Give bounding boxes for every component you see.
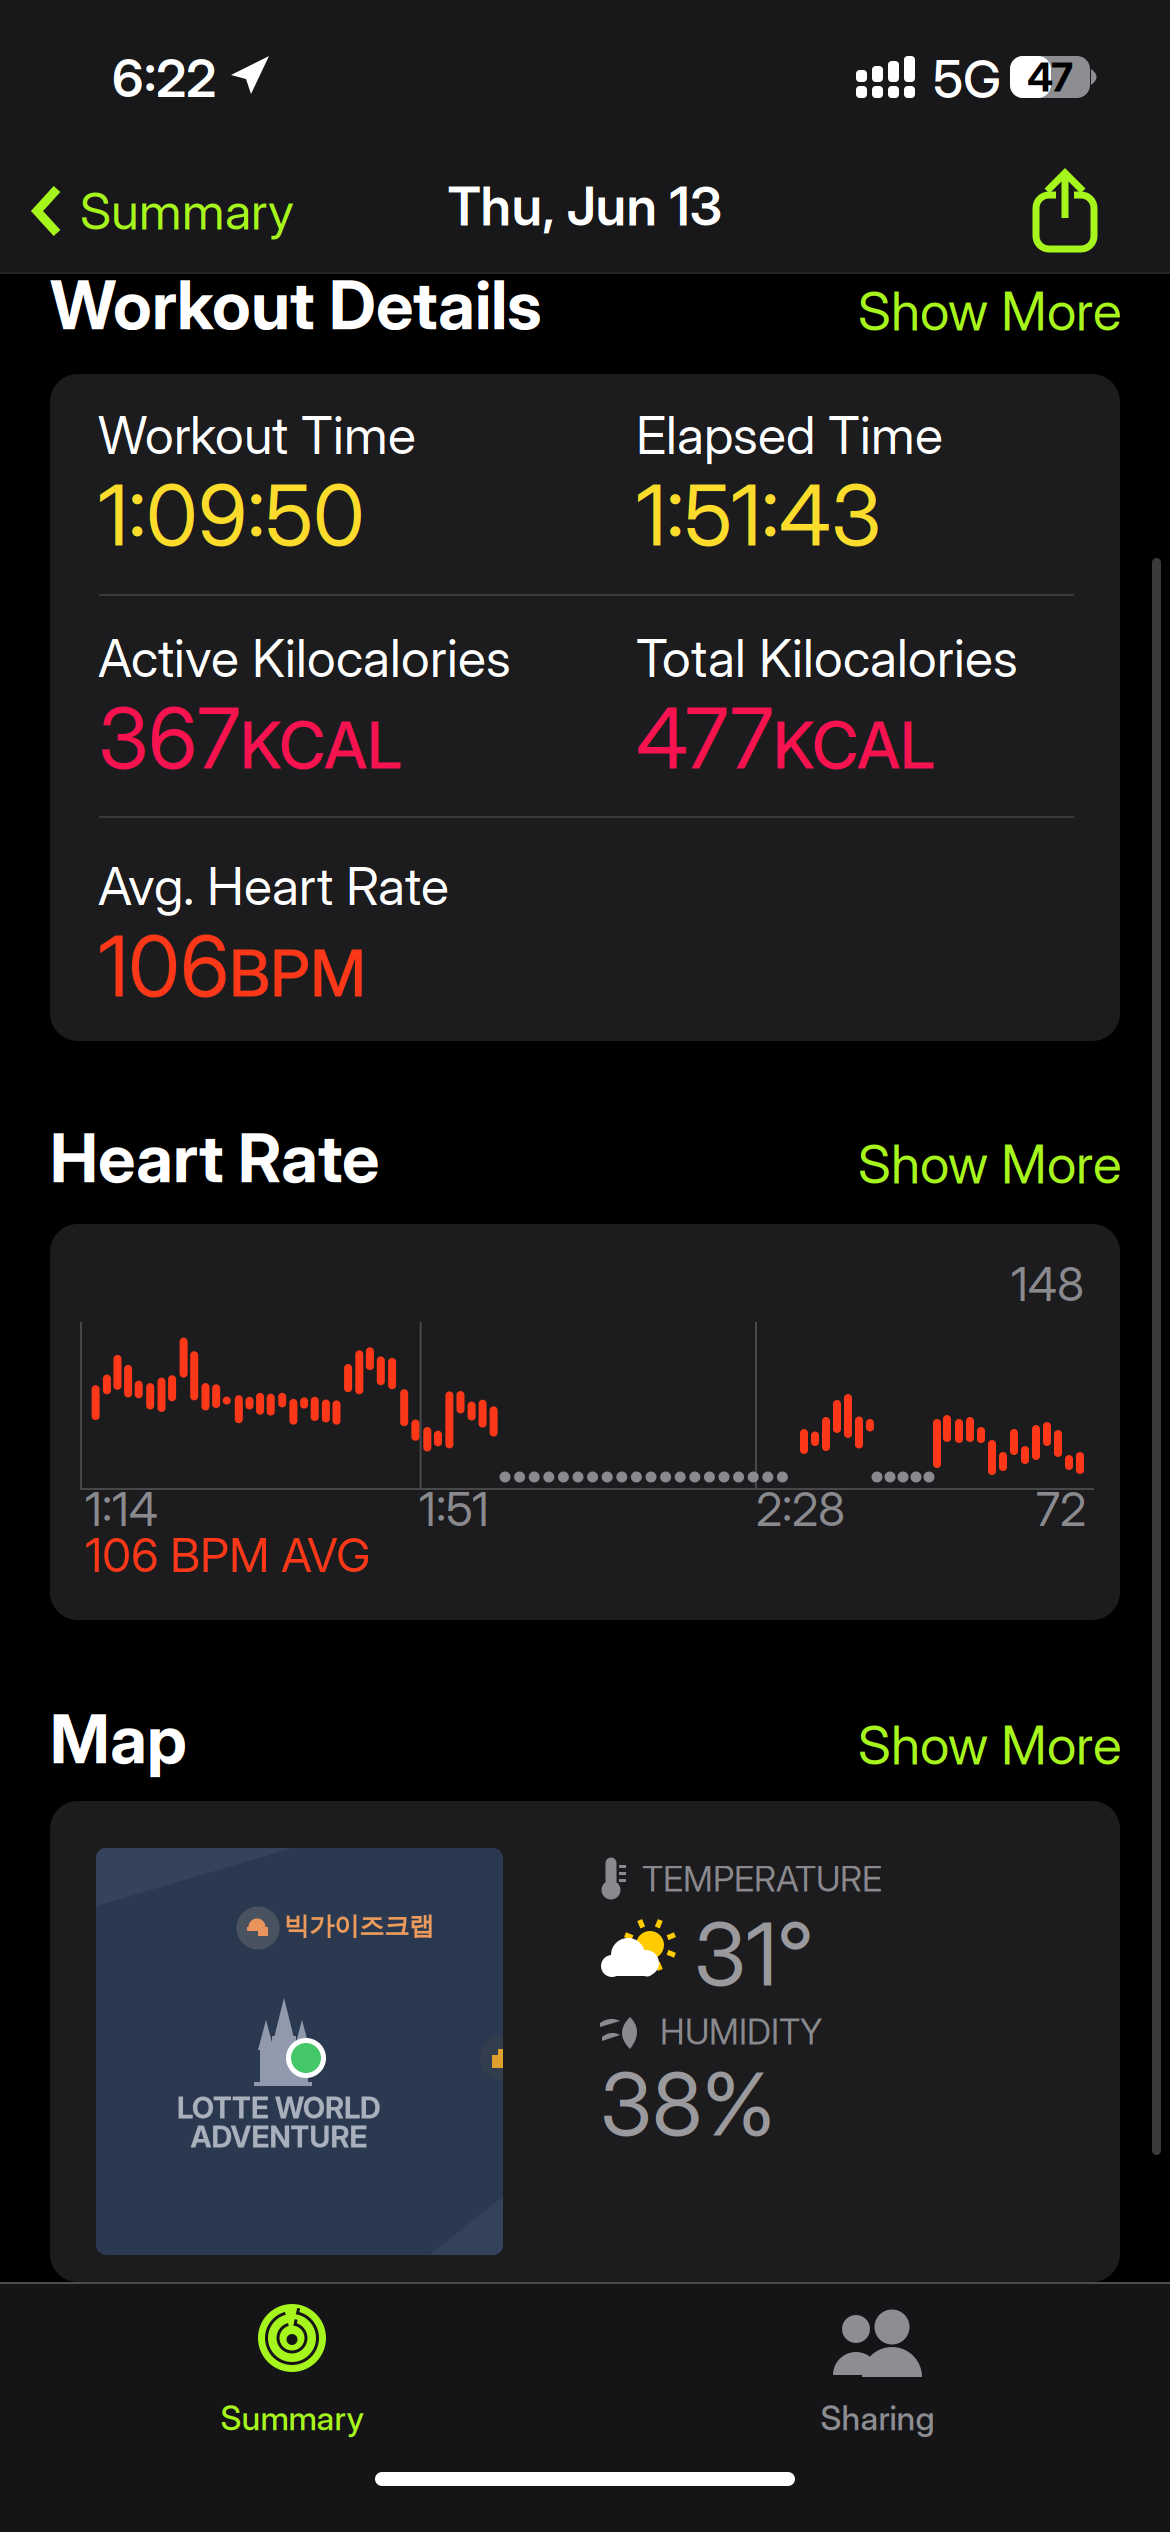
staticText: 106 BPM AVG (85, 1527, 370, 1583)
staticText: Active Kilocalories (98, 626, 511, 689)
staticText: 47 (1027, 53, 1073, 101)
button[interactable]: Show More (560, 1128, 1122, 1200)
button[interactable]: Summary (18, 155, 358, 267)
staticText: HUMIDITY (660, 2011, 822, 2053)
staticText: Avg. Heart Rate (98, 854, 449, 917)
staticText: 106 (98, 915, 229, 1017)
staticText: Elapsed Time (636, 403, 943, 466)
staticText: 367 (98, 687, 240, 789)
staticText: TEMPERATURE (642, 1858, 882, 1900)
staticText: Workout Time (98, 403, 416, 466)
staticText: Summary (80, 180, 294, 242)
button[interactable]: Share (1000, 146, 1130, 276)
staticText: 6:22 (112, 46, 216, 109)
staticText: Map (50, 1699, 187, 1779)
button[interactable]: Show More (560, 1709, 1122, 1781)
staticText: KCAL (240, 707, 402, 784)
staticText: KCAL (773, 707, 935, 784)
staticText: Thu, Jun 13 (447, 174, 722, 238)
staticText: 1:51 (419, 1481, 489, 1537)
button[interactable]: Show More (560, 275, 1122, 347)
staticText: 72 (1036, 1481, 1086, 1537)
staticText: Show More (858, 1132, 1122, 1196)
staticText: Show More (858, 1713, 1122, 1777)
staticText: 38% (600, 2052, 775, 2156)
staticText: 2:28 (756, 1481, 845, 1537)
staticText: Total Kilocalories (636, 626, 1018, 689)
staticText: Workout Details (50, 265, 542, 345)
staticText: ADVENTURE (190, 2119, 367, 2154)
staticText: 5G (933, 47, 1001, 110)
staticText: Sharing (820, 2398, 934, 2438)
staticText: 148 (1011, 1256, 1084, 1312)
staticText: 빅가이즈크랩 (284, 1910, 434, 1942)
staticText: LOTTE WORLD (177, 2090, 381, 2125)
staticText: 1:51:43 (636, 464, 881, 566)
staticText: 1:09:50 (98, 464, 365, 566)
button[interactable]: Sharing (585, 2290, 1170, 2470)
staticText: 31° (694, 1902, 814, 2006)
staticText: Show More (858, 279, 1122, 343)
staticText: 477 (636, 687, 773, 789)
staticText: BPM (229, 935, 366, 1012)
staticText: 1:14 (85, 1481, 158, 1537)
staticText: Heart Rate (50, 1118, 379, 1198)
staticText: Summary (220, 2398, 364, 2438)
button[interactable]: Summary (0, 2290, 585, 2470)
